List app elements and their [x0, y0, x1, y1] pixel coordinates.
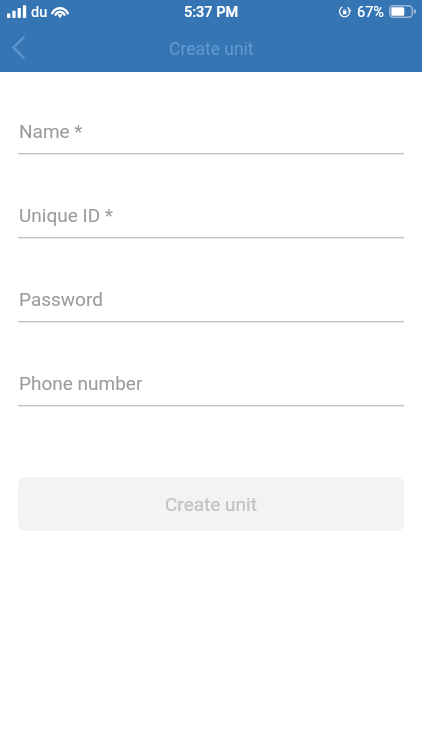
staticText: 67% [357, 4, 384, 21]
button[interactable]: Phone number [18, 362, 404, 408]
staticText: Create unit [169, 39, 254, 60]
staticText: 5:37 PM [184, 4, 239, 21]
button[interactable]: Create unit [18, 477, 404, 531]
button[interactable]: Back [0, 25, 40, 69]
staticText: Password [19, 288, 103, 310]
staticText: Name * [19, 120, 83, 142]
button[interactable]: Unique ID * [18, 194, 404, 240]
staticText: Create unit [165, 493, 257, 515]
staticText: Phone number [19, 372, 143, 394]
staticText: du [31, 4, 48, 21]
button[interactable]: Name * [18, 110, 404, 156]
staticText: Unique ID * [19, 204, 114, 226]
button[interactable]: Password [18, 278, 404, 324]
